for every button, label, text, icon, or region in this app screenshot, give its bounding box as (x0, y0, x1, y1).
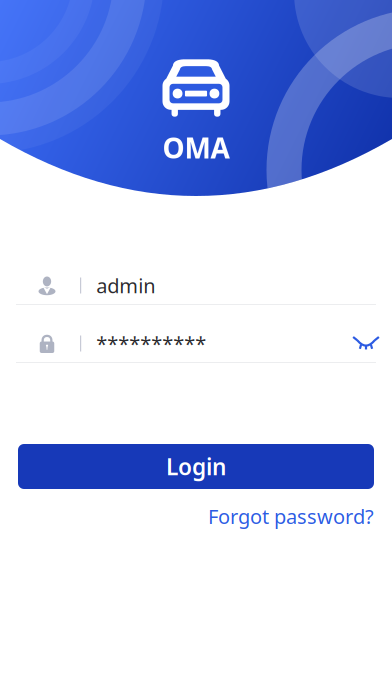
staticText: Forgot password? (208, 503, 374, 530)
button[interactable]: Show password (343, 326, 389, 360)
staticText: admin (96, 272, 155, 299)
staticText: Login (166, 451, 226, 481)
staticText: ********** (96, 330, 206, 357)
staticText: OMA (162, 129, 229, 166)
button[interactable]: Login (18, 444, 374, 489)
button[interactable]: Forgot password? (208, 503, 374, 530)
